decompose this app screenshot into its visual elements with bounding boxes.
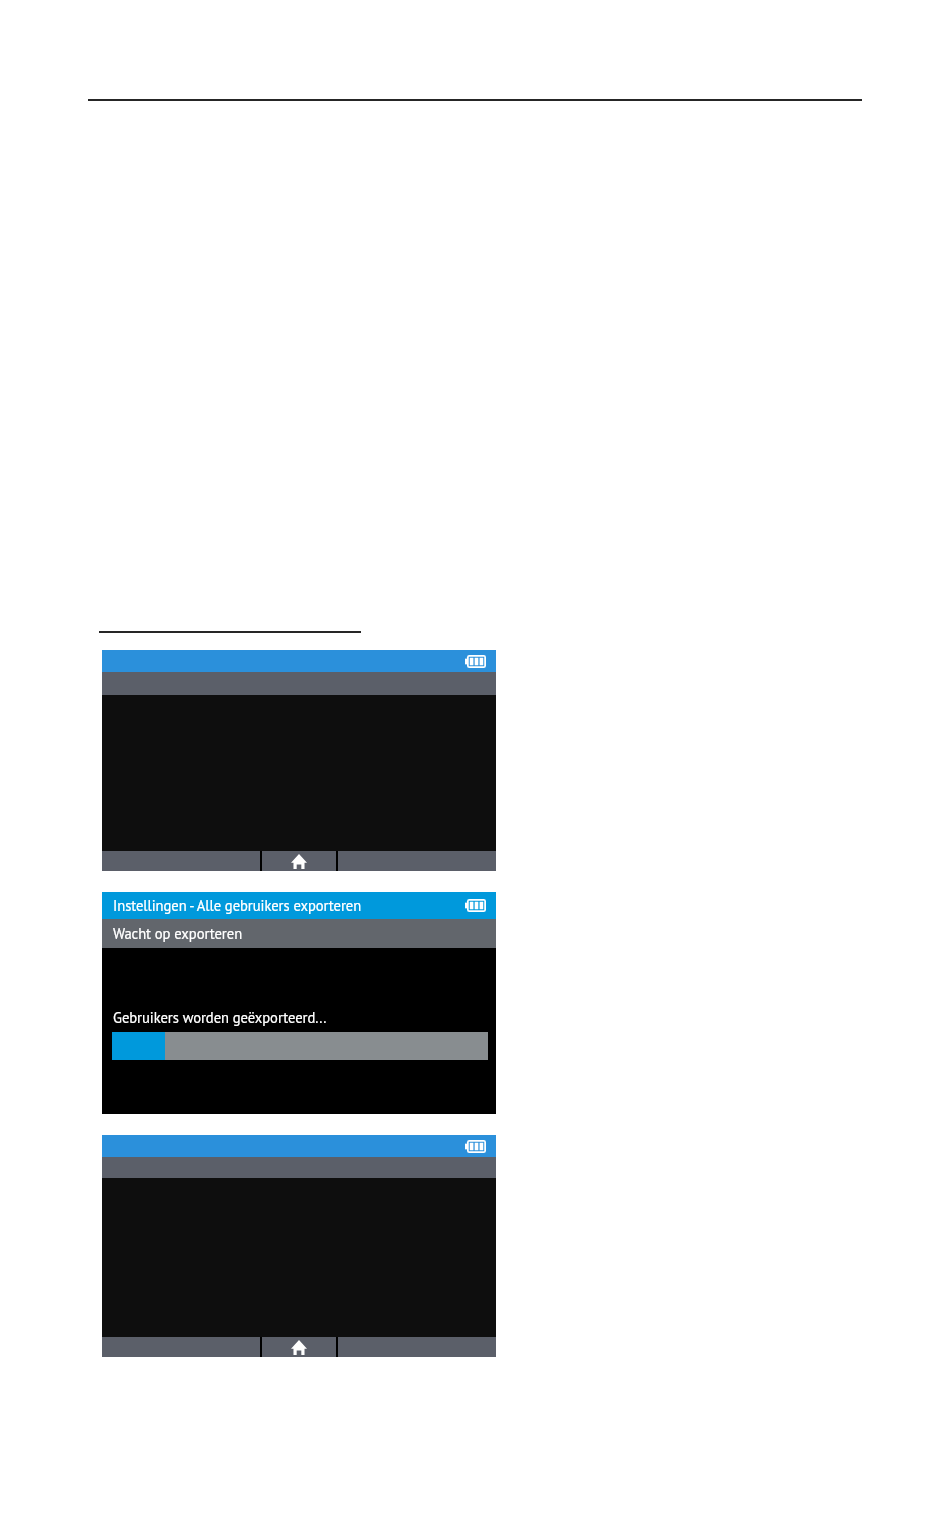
button[interactable]: Home (262, 851, 336, 871)
staticText: Wacht op exporteren (113, 924, 243, 943)
other: Battery (465, 655, 486, 668)
other: Battery (465, 1140, 486, 1153)
button[interactable]: Home (262, 1337, 336, 1357)
other: Battery (465, 899, 486, 912)
staticText: Instellingen - Alle gebruikers exportere… (113, 896, 362, 915)
staticText: Gebruikers worden geëxporteerd... (113, 1008, 327, 1027)
